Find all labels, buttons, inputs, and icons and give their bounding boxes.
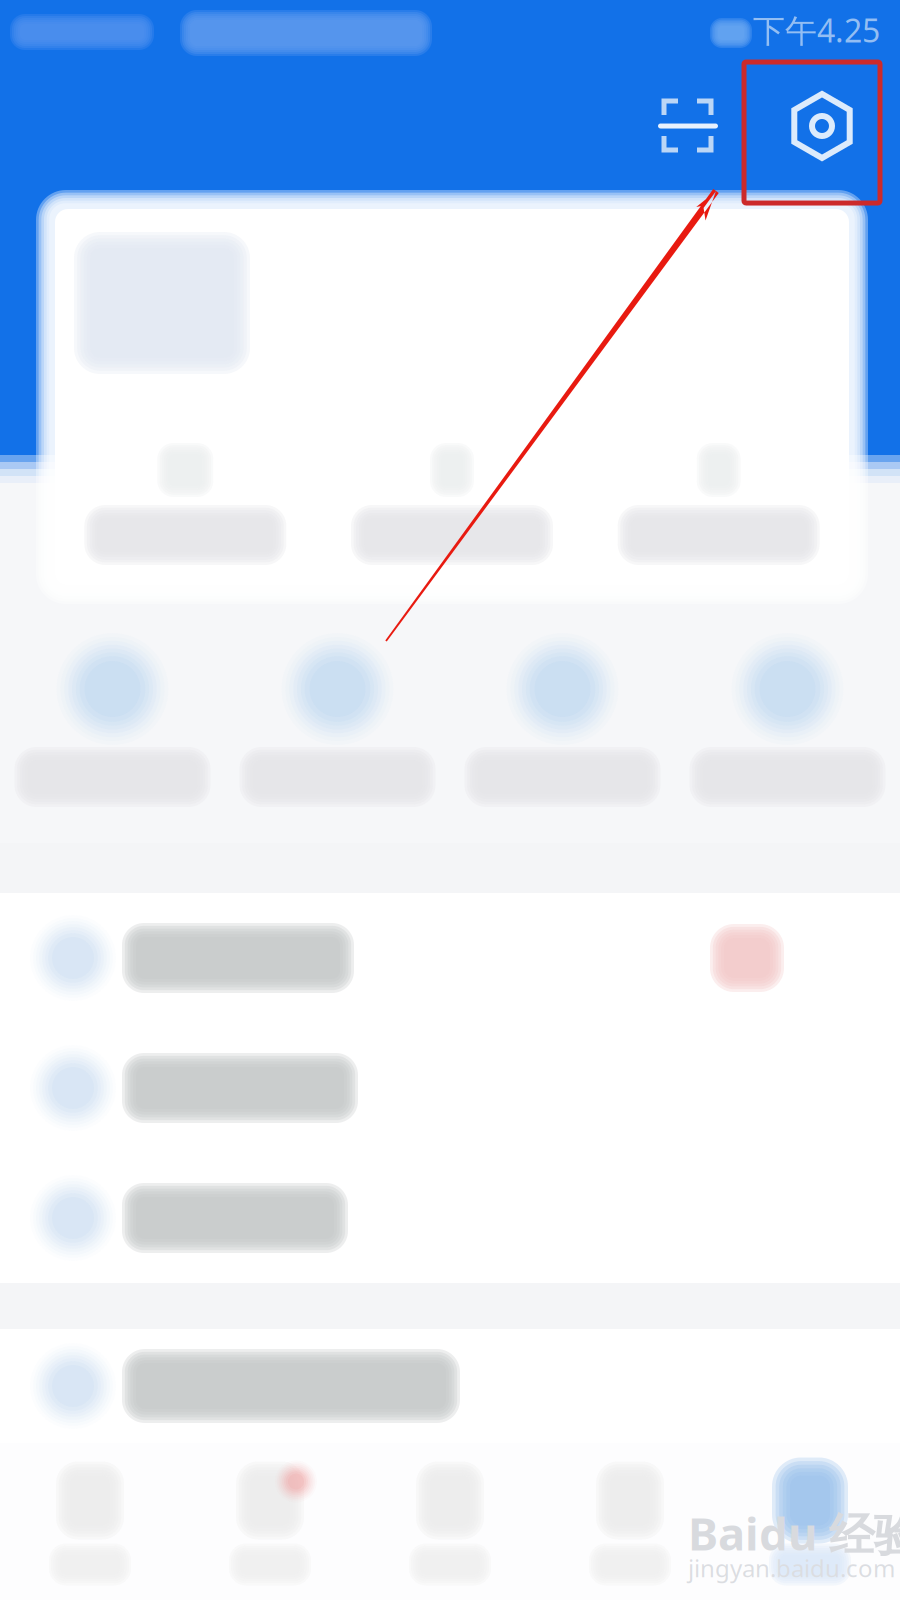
button[interactable]: Services: [180, 1457, 360, 1585]
staticText: jingyan.baidu.com: [688, 1552, 895, 1584]
button[interactable]: [0, 1329, 900, 1443]
button[interactable]: [225, 633, 450, 807]
button[interactable]: My account: [720, 1457, 900, 1585]
button[interactable]: Wealth: [540, 1457, 720, 1585]
button[interactable]: [675, 633, 900, 807]
button[interactable]: Scan code: [638, 76, 738, 176]
button[interactable]: [450, 633, 675, 807]
staticText: 下午4.25: [753, 9, 880, 51]
button[interactable]: Home: [0, 1457, 180, 1585]
button[interactable]: [0, 633, 225, 807]
button[interactable]: [52, 443, 319, 565]
button[interactable]: [319, 443, 585, 565]
button[interactable]: [0, 893, 900, 1023]
button[interactable]: [0, 1023, 900, 1153]
button[interactable]: Discover: [360, 1457, 540, 1585]
button[interactable]: [585, 443, 852, 565]
button[interactable]: Settings: [772, 76, 872, 176]
button[interactable]: [0, 1153, 900, 1283]
staticText: Baidu 经验: [688, 1503, 900, 1563]
